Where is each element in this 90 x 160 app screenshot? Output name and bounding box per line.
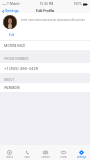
staticText: +1 (845) 366-4429	[4, 66, 39, 71]
staticText: PHONE NUMBER	[4, 57, 29, 61]
button[interactable]: Settings	[72, 145, 90, 160]
button[interactable]: Settings	[0, 8, 20, 14]
staticText: Status	[6, 156, 13, 159]
button[interactable]: Available	[0, 83, 90, 92]
button[interactable]: Camera	[36, 145, 54, 160]
button[interactable]: Chats	[54, 145, 72, 160]
button[interactable]: Profile photo	[3, 15, 17, 29]
staticText: ABOUT	[4, 78, 15, 82]
staticText: 12:44 PM	[40, 2, 54, 6]
staticText: Settings	[5, 9, 19, 13]
staticText: Edit Profile	[36, 9, 55, 13]
staticText: Chats	[60, 156, 67, 159]
staticText: Enter your name and add an optional prof…	[21, 18, 88, 21]
staticText: Calls	[24, 156, 30, 159]
staticText: 100%	[74, 2, 82, 6]
staticText: T-Mobile	[7, 2, 20, 6]
button[interactable]: Edit	[9, 33, 15, 37]
button[interactable]: Status	[0, 145, 18, 160]
staticText: Monira Bezi	[4, 43, 25, 48]
staticText: Available	[4, 85, 20, 90]
button[interactable]: Calls	[18, 145, 36, 160]
button[interactable]: Monira Bezi	[0, 41, 90, 50]
staticText: Camera	[41, 156, 50, 159]
button[interactable]: +1 (845) 366-4429	[0, 63, 90, 73]
staticText: Settings	[77, 156, 86, 159]
